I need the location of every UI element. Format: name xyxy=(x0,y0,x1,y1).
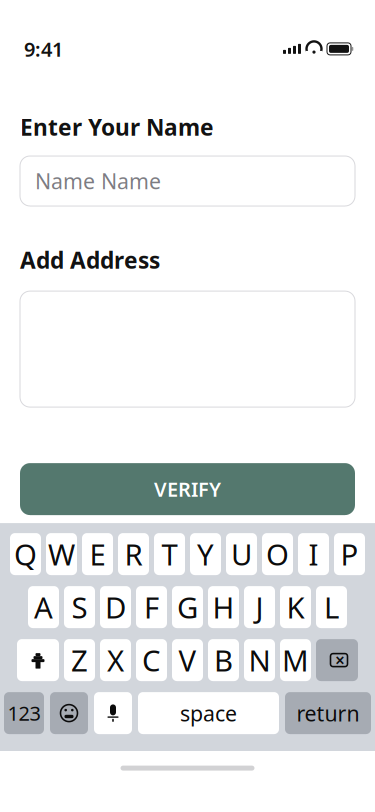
button[interactable]: Name Name xyxy=(20,156,355,206)
button[interactable]: X xyxy=(100,639,131,681)
staticText: S xyxy=(71,588,87,627)
button[interactable]: I xyxy=(298,533,329,575)
staticText: Add Address xyxy=(20,245,160,275)
staticText: return xyxy=(296,699,359,727)
staticText: R xyxy=(124,535,142,574)
button[interactable]: L xyxy=(316,586,347,628)
button[interactable]: R xyxy=(118,533,149,575)
button[interactable]: return xyxy=(285,692,371,734)
staticText: K xyxy=(286,588,304,627)
staticText: space xyxy=(180,699,237,727)
staticText: F xyxy=(144,588,159,627)
button[interactable]: G xyxy=(172,586,203,628)
button[interactable]: U xyxy=(226,533,257,575)
staticText: N xyxy=(248,641,270,680)
staticText: H xyxy=(212,588,234,627)
button[interactable]: space xyxy=(138,692,279,734)
staticText: V xyxy=(178,641,196,680)
staticText: U xyxy=(231,535,252,574)
staticText: 123 xyxy=(7,700,40,726)
button[interactable]: Q xyxy=(10,533,41,575)
button[interactable]: VERIFY xyxy=(20,463,355,515)
button[interactable]: J xyxy=(244,586,275,628)
button[interactable]: D xyxy=(100,586,131,628)
staticText: J xyxy=(255,588,263,627)
staticText: Z xyxy=(71,641,88,680)
staticText: M xyxy=(282,641,309,680)
button[interactable]: Delete xyxy=(316,639,358,681)
button[interactable]: N xyxy=(244,639,275,681)
button[interactable]: O xyxy=(262,533,293,575)
staticText: T xyxy=(161,535,177,574)
staticText: Name Name xyxy=(35,167,161,195)
button[interactable]: M xyxy=(280,639,311,681)
staticText: × xyxy=(335,649,345,672)
button[interactable]: F xyxy=(136,586,167,628)
staticText: Q xyxy=(14,535,37,574)
button[interactable]: Emoji xyxy=(50,692,88,734)
staticText: Enter Your Name xyxy=(20,112,214,142)
button[interactable]: Dictation xyxy=(94,692,132,734)
staticText: D xyxy=(105,588,126,627)
staticText: G xyxy=(177,588,198,627)
staticText: X xyxy=(107,641,124,680)
button[interactable]: P xyxy=(334,533,365,575)
staticText: O xyxy=(266,535,289,574)
button[interactable]: Shift xyxy=(17,639,59,681)
button[interactable]: S xyxy=(64,586,95,628)
staticText: Y xyxy=(197,535,214,574)
button[interactable]: 123 xyxy=(4,692,44,734)
button[interactable]: B xyxy=(208,639,239,681)
staticText: 9:41 xyxy=(24,36,63,62)
staticText: P xyxy=(340,535,358,574)
staticText: A xyxy=(34,588,53,627)
staticText: C xyxy=(142,641,161,680)
button[interactable]: V xyxy=(172,639,203,681)
staticText: B xyxy=(214,641,233,680)
button[interactable]: W xyxy=(46,533,77,575)
staticText: VERIFY xyxy=(154,476,221,502)
button[interactable]: E xyxy=(82,533,113,575)
button[interactable]: T xyxy=(154,533,185,575)
staticText: E xyxy=(89,535,105,574)
button[interactable]: A xyxy=(28,586,59,628)
button[interactable] xyxy=(20,291,355,407)
button[interactable]: C xyxy=(136,639,167,681)
button[interactable]: K xyxy=(280,586,311,628)
staticText: L xyxy=(324,588,339,627)
button[interactable]: Z xyxy=(64,639,95,681)
button[interactable]: H xyxy=(208,586,239,628)
staticText: W xyxy=(48,535,75,574)
staticText: I xyxy=(308,535,318,574)
button[interactable]: Y xyxy=(190,533,221,575)
